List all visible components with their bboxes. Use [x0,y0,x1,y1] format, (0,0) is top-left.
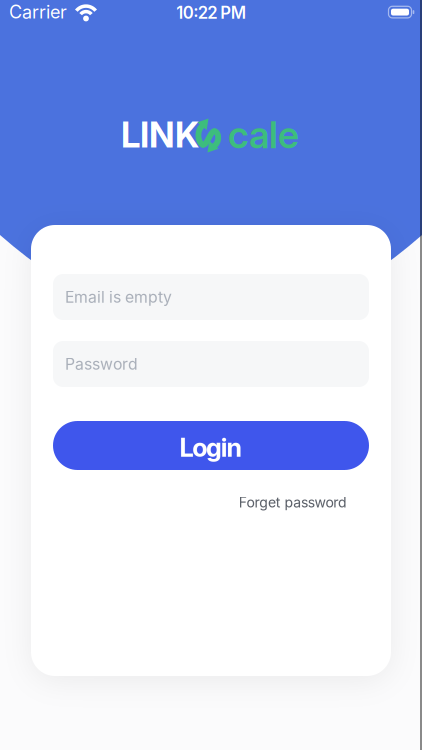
button[interactable]: Forget password [239,494,347,511]
staticText: Forget password [239,494,347,511]
staticText: Password [65,354,138,373]
button[interactable]: Password [53,341,369,387]
staticText: Login [179,432,243,463]
staticText: 10:22 PM [176,2,246,23]
button[interactable]: Login [53,421,369,470]
staticText: cale [228,112,299,157]
staticText: Email is empty [65,287,172,306]
staticText: Carrier [9,1,67,23]
staticText: LINK [121,114,199,156]
button[interactable]: Email [53,274,369,320]
